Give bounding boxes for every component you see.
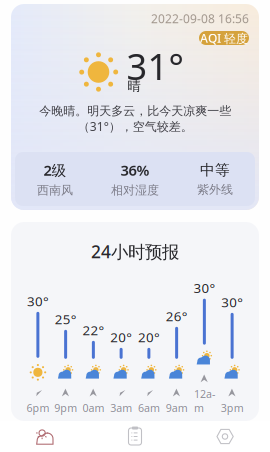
staticText: 30°	[221, 293, 243, 311]
staticText: 6am	[138, 401, 160, 415]
button[interactable]: 天气	[0, 421, 90, 452]
staticText: AQI 轻度	[200, 30, 248, 46]
staticText: 3am	[110, 401, 132, 415]
staticText: 3pm	[221, 401, 244, 415]
staticText: 中等	[200, 161, 230, 179]
staticText: 9am	[166, 401, 188, 415]
button[interactable]: 设置	[180, 421, 270, 452]
staticText: 西南风	[37, 183, 73, 198]
staticText: 12am	[194, 387, 215, 415]
staticText: 2022-09-08 16:56	[151, 10, 249, 26]
staticText: 20°	[138, 328, 160, 346]
staticText: 24小时预报	[91, 240, 179, 263]
staticText: 2级	[43, 160, 66, 180]
staticText: 相对湿度	[111, 183, 159, 198]
button[interactable]: AQI 轻度	[199, 31, 249, 45]
staticText: 晴	[127, 78, 140, 94]
staticText: 6pm	[26, 401, 49, 415]
staticText: 31°	[126, 42, 183, 90]
staticText: 22°	[82, 321, 104, 339]
staticText: 0am	[82, 401, 104, 415]
staticText: 9pm	[54, 401, 77, 415]
staticText: 30°	[27, 292, 49, 310]
staticText: 26°	[166, 307, 188, 325]
button[interactable]: 城市列表	[90, 421, 180, 452]
staticText: 20°	[110, 328, 132, 346]
staticText: 今晚晴。明天多云，比今天凉爽一些（31°），空气较差。	[39, 104, 231, 134]
staticText: 紫外线	[197, 182, 233, 197]
staticText: 30°	[193, 279, 215, 297]
staticText: 25°	[55, 310, 77, 328]
staticText: 36%	[120, 160, 149, 180]
